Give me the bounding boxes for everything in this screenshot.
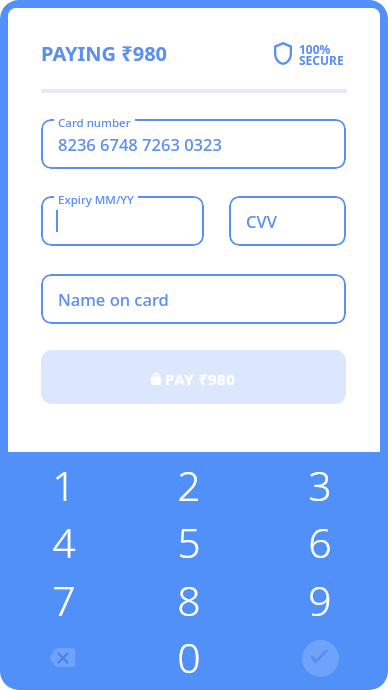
staticText: 3 xyxy=(308,457,332,513)
button[interactable]: 2 xyxy=(127,456,251,513)
button[interactable]: 6 xyxy=(251,513,388,570)
button[interactable]: 8236 6748 7263 0323 xyxy=(41,119,346,169)
staticText: CVV xyxy=(246,210,277,232)
button[interactable]: 0 xyxy=(127,628,251,685)
button[interactable] xyxy=(41,196,204,246)
button[interactable]: Backspace xyxy=(0,628,127,685)
staticText: Expiry MM/YY xyxy=(58,192,134,208)
staticText: PAYING ₹980 xyxy=(41,40,168,67)
staticText: 6 xyxy=(308,514,332,570)
button[interactable]: 1 xyxy=(0,456,127,513)
button[interactable]: Confirm xyxy=(251,628,388,685)
button[interactable]: 3 xyxy=(251,456,388,513)
button[interactable]: 7 xyxy=(0,571,127,628)
staticText: 8 xyxy=(177,572,201,628)
button[interactable]: 5 xyxy=(127,513,251,570)
staticText: 100% xyxy=(299,41,331,57)
button[interactable]: PAY ₹980 xyxy=(41,350,346,404)
staticText: 5 xyxy=(177,514,201,570)
staticText: Name on card xyxy=(58,288,169,310)
button[interactable]: 8 xyxy=(127,571,251,628)
button[interactable]: CVV xyxy=(229,196,346,246)
button[interactable]: 9 xyxy=(251,571,388,628)
staticText: PAY ₹980 xyxy=(165,369,236,389)
staticText: 4 xyxy=(52,514,76,570)
button[interactable]: 4 xyxy=(0,513,127,570)
staticText: 1 xyxy=(52,457,76,513)
staticText: 9 xyxy=(308,572,332,628)
staticText: Card number xyxy=(58,115,131,131)
staticText: 2 xyxy=(177,457,201,513)
staticText: 8236 6748 7263 0323 xyxy=(58,133,222,155)
staticText: SECURE xyxy=(299,52,344,68)
staticText: 7 xyxy=(52,572,76,628)
staticText: 0 xyxy=(177,629,201,685)
button[interactable]: Name on card xyxy=(41,274,346,324)
